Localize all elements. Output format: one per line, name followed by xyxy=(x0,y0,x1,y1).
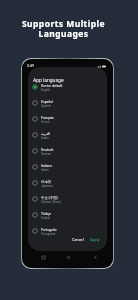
staticText: Italiano xyxy=(41,164,53,168)
staticText: العربية xyxy=(41,132,51,136)
button[interactable]: Recents xyxy=(38,252,48,262)
button[interactable]: Italiano xyxy=(28,159,107,175)
staticText: Arabic xyxy=(41,136,49,139)
staticText: English xyxy=(41,88,51,91)
staticText: Spanish xyxy=(41,104,51,107)
button[interactable]: Cancel xyxy=(69,235,87,243)
button[interactable]: Türkçe xyxy=(28,207,107,223)
staticText: Chinese (China) xyxy=(41,200,61,203)
button[interactable]: Español xyxy=(28,95,107,111)
staticText: Portuguese xyxy=(41,232,56,235)
button[interactable]: Apply xyxy=(87,235,103,243)
button[interactable]: Deutsch xyxy=(28,143,107,159)
staticText: Device default xyxy=(41,84,63,88)
staticText: 日本語 xyxy=(41,180,52,184)
button[interactable]: Device default xyxy=(28,79,107,95)
button[interactable]: Home xyxy=(63,252,73,262)
staticText: 3:49 xyxy=(27,64,34,68)
staticText: Apply xyxy=(90,237,100,241)
button[interactable]: Back xyxy=(90,252,100,262)
staticText: 中文 (中国) xyxy=(41,196,58,200)
staticText: Japanese xyxy=(41,184,54,187)
staticText: Supports Multiple Languages xyxy=(0,18,127,39)
staticText: Turkish xyxy=(41,216,51,219)
staticText: Türkçe xyxy=(41,212,52,216)
button[interactable]: Français xyxy=(28,111,107,127)
staticText: Cancel xyxy=(72,237,84,241)
staticText: Français xyxy=(41,116,54,120)
button[interactable]: 中文 (中国) xyxy=(28,191,107,207)
staticText: Español xyxy=(41,100,54,104)
staticText: Deutsch xyxy=(41,148,54,152)
staticText: Português xyxy=(41,228,57,232)
button[interactable]: العربية xyxy=(28,127,107,143)
staticText: App language xyxy=(33,77,64,83)
staticText: Italian xyxy=(41,168,49,171)
staticText: German xyxy=(41,152,51,155)
button[interactable]: 日本語 xyxy=(28,175,107,191)
staticText: French xyxy=(41,120,50,123)
button[interactable]: Português xyxy=(28,223,107,239)
